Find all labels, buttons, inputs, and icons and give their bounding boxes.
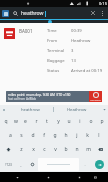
- staticText: l: [98, 132, 100, 139]
- button[interactable]: n: [72, 143, 82, 156]
- button[interactable]: z: [16, 143, 27, 156]
- button[interactable]: Space: [38, 158, 79, 171]
- staticText: j: [76, 132, 78, 139]
- button[interactable]: Expand suggestions: [100, 105, 108, 114]
- button[interactable]: Clear: [89, 9, 97, 17]
- button[interactable]: Heathrow: [54, 105, 100, 114]
- button[interactable]: Voice input: [0, 105, 8, 114]
- staticText: ,: [20, 162, 22, 167]
- staticText: h: [64, 132, 68, 139]
- staticText: Terminal: [47, 48, 71, 54]
- button[interactable]: y: [53, 115, 63, 127]
- button[interactable]: f: [38, 129, 49, 141]
- staticText: From: [47, 38, 71, 44]
- button[interactable]: k: [82, 129, 93, 141]
- staticText: q: [4, 118, 8, 125]
- staticText: BA001: [19, 28, 33, 34]
- button[interactable]: Home: [44, 173, 53, 182]
- staticText: d: [31, 132, 35, 139]
- staticText: k: [86, 132, 89, 139]
- button[interactable]: s: [16, 129, 27, 141]
- staticText: 13: [71, 58, 103, 64]
- button[interactable]: u: [64, 115, 74, 127]
- button[interactable]: q: [1, 115, 10, 127]
- button[interactable]: l: [93, 129, 104, 141]
- button[interactable]: Back: [13, 173, 22, 182]
- staticText: m: [86, 146, 91, 153]
- staticText: p: [100, 118, 104, 125]
- button[interactable]: Search: [12, 10, 19, 17]
- button[interactable]: More options: [98, 9, 106, 17]
- staticText: t: [46, 118, 48, 125]
- staticText: y: [57, 118, 60, 125]
- staticText: Status: [47, 68, 71, 74]
- staticText: e: [24, 118, 27, 125]
- staticText: Heathrow: [67, 107, 87, 113]
- staticText: AdChoices: [90, 99, 101, 102]
- button[interactable]: Hide keyboard: [91, 173, 100, 182]
- button[interactable]: d: [27, 129, 38, 141]
- staticText: b: [64, 146, 68, 153]
- staticText: w: [14, 118, 18, 125]
- staticText: miles point mues dep. 9:30 AM ETD x150: [8, 93, 71, 97]
- staticText: r: [35, 118, 38, 125]
- button[interactable]: v: [50, 143, 60, 156]
- staticText: Heathrow: [71, 38, 103, 44]
- staticText: Baggage: [47, 58, 71, 64]
- button[interactable]: p: [97, 115, 107, 127]
- staticText: z: [20, 146, 23, 153]
- staticText: .: [84, 162, 86, 167]
- button[interactable]: a: [4, 129, 16, 141]
- button[interactable]: j: [71, 129, 82, 141]
- button[interactable]: heathrow: [8, 105, 53, 114]
- button[interactable]: g: [49, 129, 60, 141]
- button[interactable]: App: [2, 10, 9, 17]
- staticText: Time: [47, 28, 71, 34]
- staticText: g: [53, 132, 57, 139]
- button[interactable]: w: [11, 115, 20, 127]
- button[interactable]: e: [21, 115, 30, 127]
- button[interactable]: Emoji: [27, 158, 37, 171]
- button[interactable]: miles point mues dep. 9:30 AM ETD x150: [6, 91, 102, 102]
- button[interactable]: Shift: [1, 143, 15, 156]
- button[interactable]: Recents: [75, 173, 84, 182]
- staticText: ?123: [5, 163, 12, 167]
- button[interactable]: b: [61, 143, 71, 156]
- staticText: s: [20, 132, 23, 139]
- staticText: x: [32, 146, 35, 153]
- button[interactable]: ,: [16, 158, 26, 171]
- staticText: heathrow: [21, 107, 40, 113]
- staticText: 0:15: [99, 1, 107, 6]
- button[interactable]: r: [31, 115, 41, 127]
- staticText: 00:39: [71, 28, 103, 34]
- button[interactable]: o: [86, 115, 96, 127]
- staticText: o: [89, 118, 93, 125]
- staticText: fast ad from AdMob: [8, 97, 37, 101]
- staticText: c: [43, 146, 46, 153]
- staticText: n: [75, 146, 79, 153]
- button[interactable]: ?123: [1, 158, 15, 171]
- staticText: i: [79, 118, 81, 125]
- button[interactable]: i: [75, 115, 85, 127]
- button[interactable]: m: [83, 143, 93, 156]
- button[interactable]: h: [60, 129, 71, 141]
- button[interactable]: Backspace: [94, 143, 107, 156]
- button[interactable]: Search: [95, 160, 104, 169]
- staticText: a: [9, 132, 12, 139]
- button[interactable]: t: [42, 115, 52, 127]
- button[interactable]: c: [39, 143, 49, 156]
- staticText: Arrived at 00:19: [71, 68, 103, 74]
- staticText: v: [54, 146, 57, 153]
- staticText: f: [43, 132, 45, 139]
- staticText: u: [67, 118, 71, 125]
- button[interactable]: BA001: [0, 26, 108, 74]
- staticText: 3: [71, 48, 103, 54]
- button[interactable]: x: [28, 143, 38, 156]
- staticText: heathrow: [21, 10, 44, 17]
